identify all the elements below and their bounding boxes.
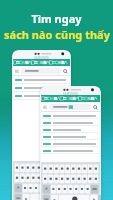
other: Search icon [63,69,68,74]
button[interactable]: Result 2 [13,84,70,92]
staticText: SAMSUNG [63,92,79,95]
button[interactable]: Toolbar [13,59,70,66]
button[interactable]: Toolbar [41,95,100,102]
button[interactable]: Result 2 [41,119,100,126]
button[interactable]: Result 1 [41,112,100,119]
staticText: Tìm ngay [31,11,82,26]
staticText: sách nào cũng thấy [4,27,110,42]
button[interactable]: Result 3 [13,92,70,100]
button[interactable]: Result 3 [41,126,100,133]
button[interactable]: SAMSUNG [40,86,101,200]
button[interactable]: Result 1 [13,76,70,84]
button[interactable]: Search [13,66,70,76]
button[interactable]: Result 4 [41,133,100,140]
button[interactable]: Result 6 [41,147,100,154]
button[interactable]: SAMSUNG [12,50,71,200]
button[interactable]: Search [41,102,100,112]
other: Search icon [93,105,98,110]
staticText: SAMSUNG [34,56,50,59]
button[interactable]: Result 5 [41,140,100,147]
